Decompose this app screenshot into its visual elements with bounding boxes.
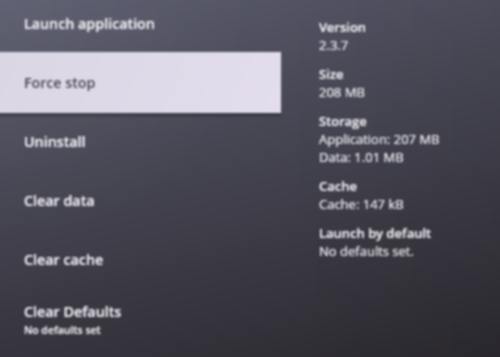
staticText: Cache: 147 kB (319, 195, 404, 213)
staticText: No defaults set (24, 323, 101, 337)
button[interactable]: Clear data (0, 171, 281, 230)
staticText: 2.3.7 (319, 36, 349, 54)
button[interactable]: Uninstall (0, 112, 281, 171)
staticText: Cache (319, 177, 357, 195)
staticText: Clear cache (24, 250, 104, 269)
staticText: No defaults set. (319, 242, 414, 260)
staticText: Application: 207 MB (319, 130, 440, 148)
staticText: Force stop (24, 73, 96, 92)
staticText: Clear Defaults (24, 302, 122, 321)
staticText: Uninstall (24, 132, 86, 151)
button[interactable]: Clear Defaults (0, 289, 281, 348)
staticText: Size (319, 65, 344, 83)
button[interactable]: Clear cache (0, 230, 281, 289)
button[interactable]: Force stop (0, 53, 281, 112)
button[interactable]: Launch application (0, 0, 281, 53)
staticText: 208 MB (319, 83, 365, 101)
staticText: Clear data (24, 191, 95, 210)
staticText: Launch application (24, 14, 155, 33)
staticText: Version (319, 18, 367, 36)
staticText: Storage (319, 112, 367, 130)
staticText: Data: 1.01 MB (319, 148, 404, 166)
staticText: Launch by default (319, 224, 432, 242)
